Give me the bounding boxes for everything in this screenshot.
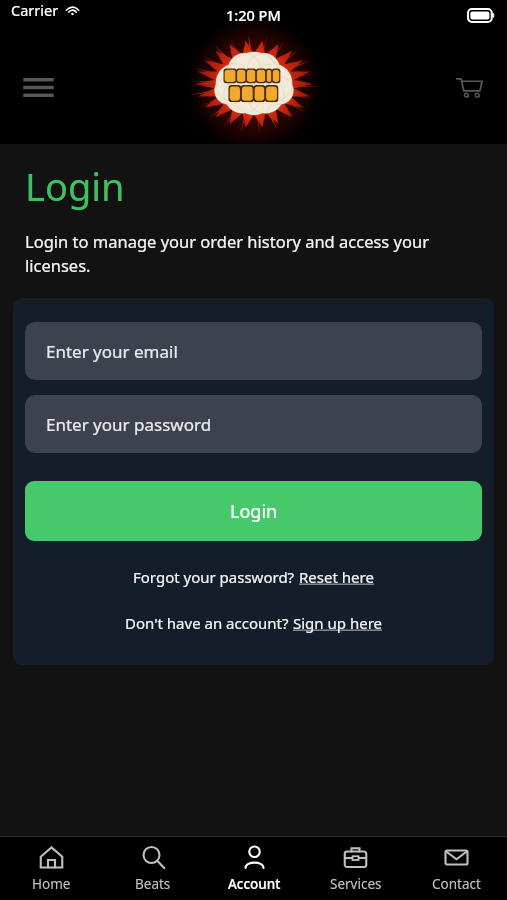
staticText: Forgot your password? <box>133 567 299 587</box>
staticText: Services <box>330 875 382 893</box>
button[interactable]: Contact <box>406 837 507 900</box>
staticText: Account <box>228 875 281 893</box>
button[interactable]: Beats <box>102 837 204 900</box>
staticText: Login <box>25 160 125 212</box>
button[interactable]: Services <box>305 837 406 900</box>
button[interactable]: Menu <box>16 65 60 109</box>
staticText: Carrier <box>11 0 59 20</box>
staticText: Login to manage your order history and a… <box>25 230 429 277</box>
staticText: Enter your email <box>46 340 178 363</box>
staticText: Reset here <box>299 567 374 587</box>
button[interactable]: Login <box>25 481 482 541</box>
button[interactable]: Forgot your password? <box>25 563 482 591</box>
staticText: Don't have an account? <box>125 613 293 633</box>
staticText: 1:20 PM <box>226 5 281 25</box>
staticText: Beats <box>135 875 171 893</box>
staticText: Sign up here <box>293 613 382 633</box>
staticText: Login <box>230 499 278 524</box>
staticText: Contact <box>432 875 481 893</box>
button[interactable]: Home <box>0 837 102 900</box>
button[interactable]: Account <box>204 837 305 900</box>
button[interactable]: Don't have an account? <box>25 609 482 637</box>
button[interactable]: Cart <box>447 65 491 109</box>
staticText: Home <box>32 875 71 893</box>
button[interactable]: Enter your email <box>25 322 482 380</box>
staticText: Enter your password <box>46 413 212 436</box>
button[interactable]: Enter your password <box>25 395 482 453</box>
